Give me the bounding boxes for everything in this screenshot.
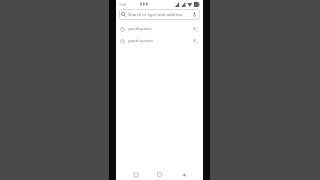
button[interactable]: goodquotes xyxy=(116,23,203,35)
button[interactable]: Home xyxy=(155,170,164,179)
button[interactable]: Search xyxy=(119,9,200,20)
staticText: 1:04 xyxy=(119,2,127,7)
button[interactable]: Voice search xyxy=(191,11,198,18)
button[interactable]: good quotes xyxy=(116,35,203,47)
other: Search xyxy=(121,12,126,17)
staticText: goodquotes xyxy=(128,26,190,32)
staticText: Search or type web address xyxy=(128,12,190,18)
button[interactable]: Insert suggestion xyxy=(192,26,199,33)
button[interactable]: Recents xyxy=(131,170,140,179)
button[interactable]: Back xyxy=(179,170,188,179)
button[interactable]: Insert suggestion xyxy=(192,38,199,45)
staticText: good quotes xyxy=(128,38,190,44)
